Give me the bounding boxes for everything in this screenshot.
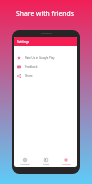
staticText: Share with friends [16, 9, 74, 18]
button[interactable]: Favorites [15, 156, 35, 167]
staticText: Cards [43, 163, 49, 166]
button[interactable]: Feedback [14, 62, 77, 71]
staticText: Settings [17, 40, 30, 44]
button[interactable]: Share [14, 71, 77, 80]
staticText: Share [25, 74, 33, 78]
staticText: Settings [62, 163, 71, 166]
staticText: Rate Us in Google Play [25, 56, 55, 60]
button[interactable]: Rate Us in Google Play [14, 53, 77, 62]
staticText: Feedback [25, 65, 38, 69]
button[interactable]: Cards [36, 156, 56, 167]
button[interactable]: Settings [56, 156, 76, 167]
staticText: Favorites [20, 163, 30, 166]
